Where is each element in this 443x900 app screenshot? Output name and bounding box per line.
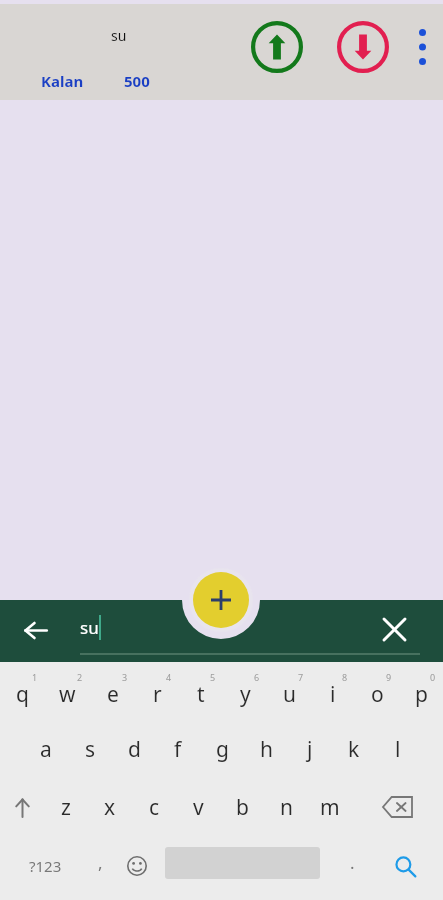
button[interactable]: Clear xyxy=(369,604,419,654)
staticText: 6 xyxy=(254,671,260,683)
staticText: q xyxy=(16,680,29,709)
button[interactable]: Increase xyxy=(248,18,306,76)
staticText: 4 xyxy=(166,671,172,683)
button[interactable]: Decrease xyxy=(334,18,392,76)
staticText: p xyxy=(415,680,428,709)
button[interactable]: x xyxy=(88,778,132,836)
button[interactable]: Period xyxy=(330,836,374,896)
staticText: z xyxy=(61,793,71,822)
staticText: k xyxy=(348,735,360,764)
button[interactable]: p xyxy=(399,662,443,720)
staticText: 2 xyxy=(77,671,83,683)
button[interactable]: r xyxy=(135,662,179,720)
staticText: 1 xyxy=(32,671,38,683)
button[interactable]: y xyxy=(223,662,267,720)
staticText: o xyxy=(371,680,384,709)
staticText: g xyxy=(216,735,229,764)
button[interactable]: e xyxy=(90,662,135,720)
button[interactable]: f xyxy=(156,720,200,778)
button[interactable]: Add xyxy=(193,572,249,628)
staticText: m xyxy=(320,793,340,822)
button[interactable]: a xyxy=(24,720,68,778)
staticText: b xyxy=(236,793,249,822)
staticText: i xyxy=(330,680,336,709)
staticText: 0 xyxy=(430,671,436,683)
button[interactable]: q xyxy=(0,662,45,720)
button[interactable]: Comma xyxy=(80,836,120,896)
staticText: e xyxy=(107,680,119,709)
button[interactable]: l xyxy=(376,720,420,778)
button[interactable]: Back xyxy=(9,604,61,656)
button[interactable]: Shift xyxy=(0,778,44,836)
staticText: s xyxy=(85,735,96,764)
button[interactable]: g xyxy=(200,720,244,778)
staticText: w xyxy=(59,680,76,709)
button[interactable]: o xyxy=(355,662,399,720)
button[interactable]: s xyxy=(68,720,112,778)
button[interactable]: n xyxy=(264,778,308,836)
button[interactable]: More options xyxy=(402,14,443,80)
button[interactable]: k xyxy=(332,720,376,778)
button[interactable]: w xyxy=(45,662,90,720)
staticText: v xyxy=(193,793,204,822)
staticText: 8 xyxy=(342,671,348,683)
button[interactable]: m xyxy=(308,778,352,836)
staticText: f xyxy=(174,735,182,764)
staticText: l xyxy=(395,735,401,764)
button[interactable]: h xyxy=(244,720,288,778)
staticText: d xyxy=(128,735,141,764)
staticText: su xyxy=(111,26,127,45)
staticText: . xyxy=(350,851,355,874)
button[interactable]: d xyxy=(112,720,156,778)
staticText: u xyxy=(283,680,296,709)
staticText: Kalan xyxy=(41,71,84,91)
staticText: c xyxy=(149,793,160,822)
staticText: a xyxy=(40,735,52,764)
button[interactable]: i xyxy=(311,662,355,720)
button[interactable]: c xyxy=(132,778,176,836)
staticText: n xyxy=(280,793,293,822)
staticText: ?123 xyxy=(29,856,62,876)
staticText: r xyxy=(153,680,162,709)
button[interactable]: su xyxy=(80,604,360,654)
button[interactable]: ?123 xyxy=(10,836,80,896)
button[interactable]: b xyxy=(220,778,264,836)
staticText: 7 xyxy=(298,671,304,683)
staticText: x xyxy=(104,793,116,822)
staticText: y xyxy=(240,680,251,709)
staticText: t xyxy=(197,680,205,709)
button[interactable]: v xyxy=(176,778,220,836)
button[interactable]: u xyxy=(267,662,311,720)
staticText: 3 xyxy=(122,671,128,683)
button[interactable]: t xyxy=(179,662,223,720)
staticText: su xyxy=(80,616,99,639)
button[interactable]: Emoji xyxy=(115,836,159,896)
staticText: j xyxy=(307,735,313,764)
button[interactable]: Search xyxy=(380,836,430,896)
staticText: 5 xyxy=(210,671,216,683)
staticText: h xyxy=(260,735,273,764)
staticText: 500 xyxy=(124,71,150,91)
staticText: , xyxy=(98,851,103,874)
staticText: 9 xyxy=(386,671,392,683)
button[interactable]: z xyxy=(44,778,88,836)
button[interactable]: j xyxy=(288,720,332,778)
button[interactable]: Backspace xyxy=(352,778,443,836)
